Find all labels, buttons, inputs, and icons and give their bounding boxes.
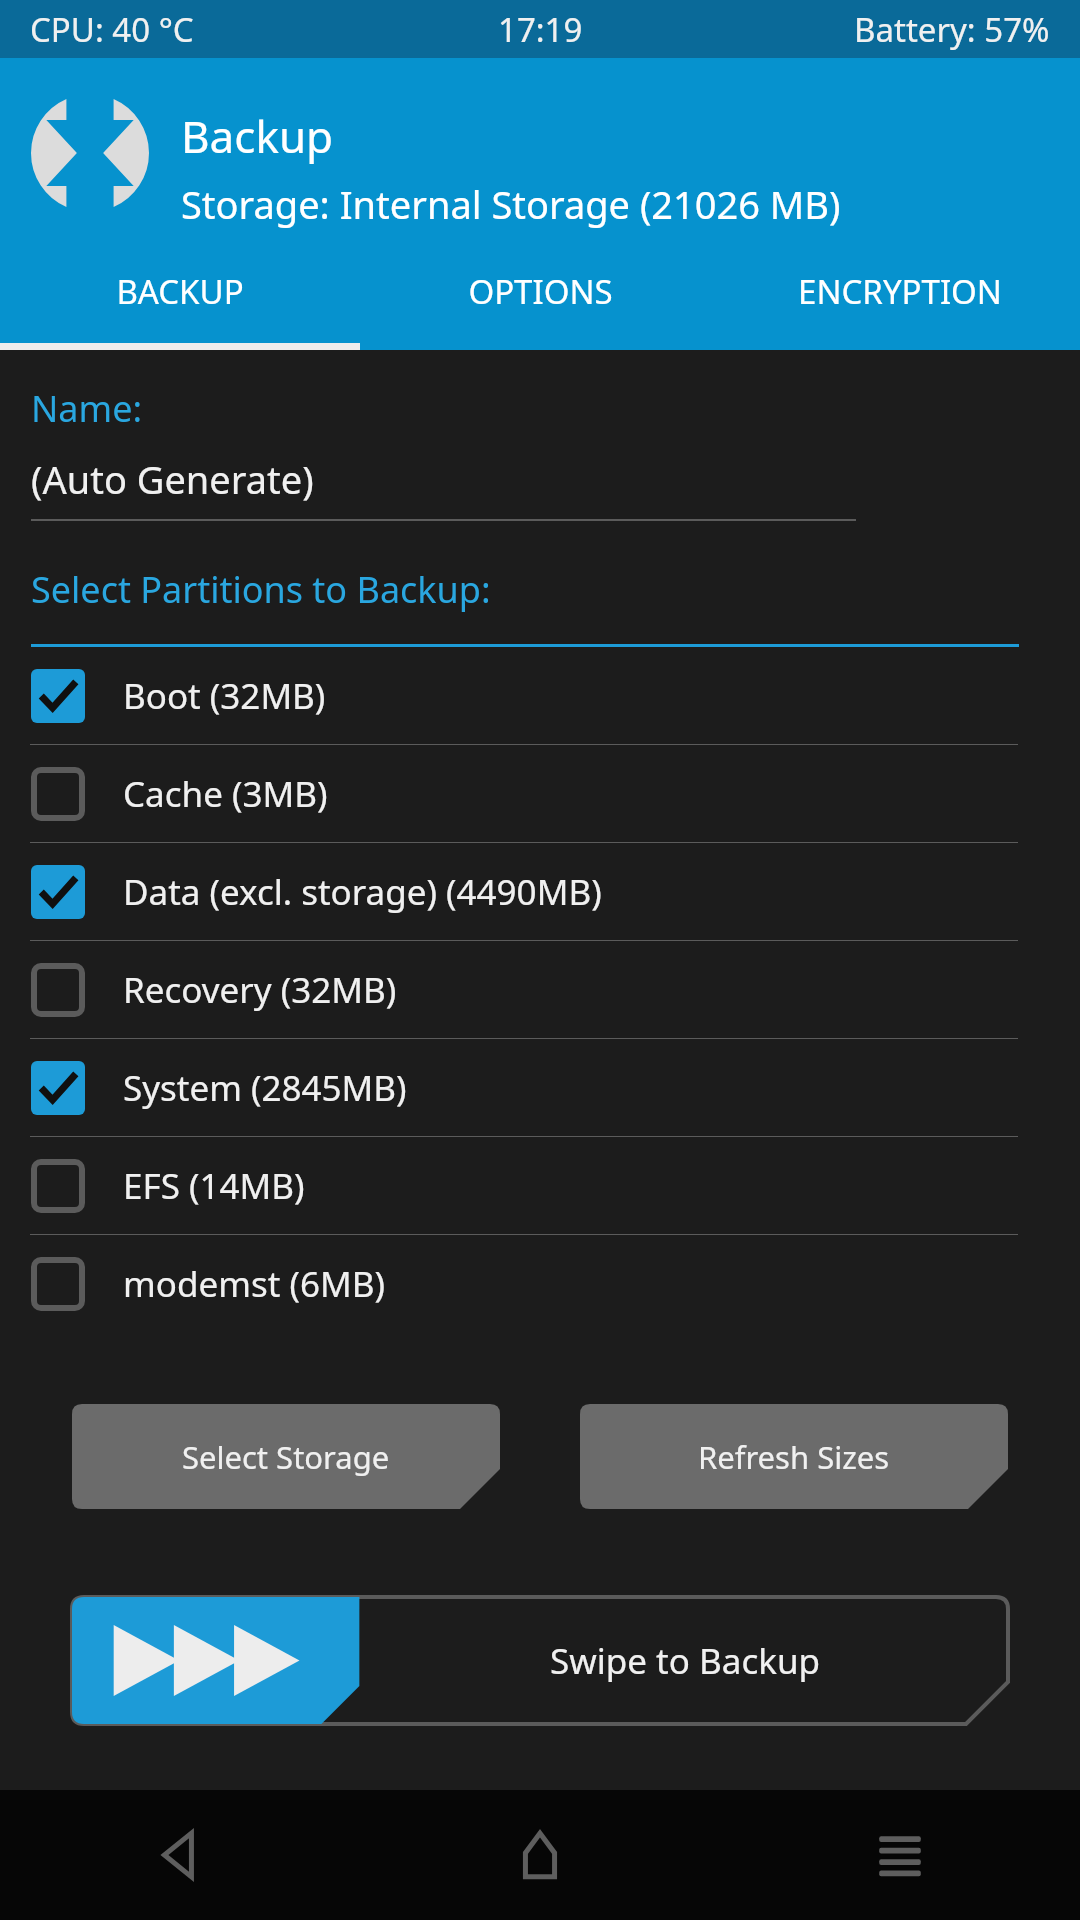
- staticText: Select Partitions to Backup:: [31, 565, 491, 614]
- staticText: Select Storage: [182, 1436, 390, 1478]
- button[interactable]: BACKUP: [0, 240, 360, 350]
- staticText: Boot (32MB): [123, 672, 326, 720]
- staticText: Recovery (32MB): [123, 966, 397, 1014]
- button[interactable]: Select Storage: [72, 1404, 500, 1509]
- button[interactable]: System (2845MB): [0, 1039, 1080, 1136]
- staticText: Battery: 57%: [854, 7, 1050, 52]
- staticText: (Auto Generate): [31, 453, 314, 505]
- staticText: System (2845MB): [123, 1064, 407, 1112]
- button[interactable]: Swipe to Backup: [72, 1597, 1008, 1724]
- button[interactable]: Boot (32MB): [0, 647, 1080, 744]
- staticText: OPTIONS: [468, 269, 613, 314]
- button[interactable]: Back: [0, 1790, 360, 1920]
- staticText: Swipe to Backup: [550, 1637, 821, 1685]
- button[interactable]: modemst (6MB): [0, 1235, 1080, 1332]
- staticText: Storage: Internal Storage (21026 MB): [181, 178, 841, 230]
- staticText: Cache (3MB): [123, 770, 328, 818]
- staticText: BACKUP: [116, 269, 244, 314]
- button[interactable]: Recovery (32MB): [0, 941, 1080, 1038]
- button[interactable]: EFS (14MB): [0, 1137, 1080, 1234]
- button[interactable]: Cache (3MB): [0, 745, 1080, 842]
- button[interactable]: Menu: [720, 1790, 1080, 1920]
- staticText: EFS (14MB): [123, 1162, 305, 1210]
- staticText: 17:19: [498, 7, 583, 52]
- button[interactable]: Refresh Sizes: [580, 1404, 1008, 1509]
- staticText: modemst (6MB): [123, 1260, 385, 1308]
- staticText: Refresh Sizes: [698, 1436, 890, 1478]
- button[interactable]: Data (excl. storage) (4490MB): [0, 843, 1080, 940]
- staticText: Name:: [31, 384, 143, 433]
- button[interactable]: Home: [360, 1790, 720, 1920]
- button[interactable]: OPTIONS: [360, 240, 720, 350]
- staticText: Data (excl. storage) (4490MB): [123, 868, 602, 916]
- button[interactable]: ENCRYPTION: [720, 240, 1080, 350]
- staticText: ENCRYPTION: [798, 269, 1002, 314]
- staticText: CPU: 40 °C: [30, 7, 194, 52]
- staticText: Backup: [181, 106, 334, 166]
